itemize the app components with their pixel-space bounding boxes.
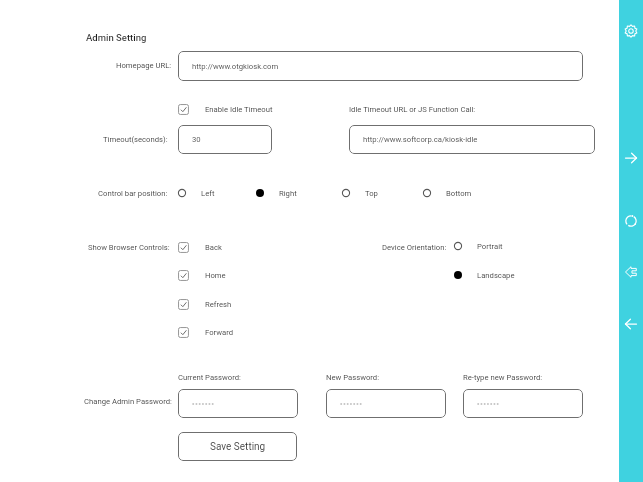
button[interactable]: http://www.softcorp.ca/kiosk-idle (349, 125, 595, 154)
button[interactable]: Portrait (453, 238, 503, 254)
button[interactable] (463, 389, 583, 418)
staticText: Right (279, 189, 297, 198)
staticText: Change Admin Password: (84, 397, 172, 406)
button[interactable]: Back (619, 312, 643, 336)
staticText: Enable Idle Timeout (205, 105, 273, 114)
staticText: Forward (205, 328, 234, 337)
staticText: New Password: (326, 373, 380, 382)
staticText: Control bar position: (98, 189, 168, 198)
staticText: Idle Timeout URL or JS Function Call: (349, 105, 476, 114)
button[interactable]: Refresh (178, 296, 232, 312)
button[interactable]: Top (341, 185, 378, 201)
button[interactable]: Right (255, 185, 297, 201)
button[interactable] (326, 389, 446, 418)
staticText: http://www.otgkiosk.com (192, 62, 279, 71)
staticText: Left (201, 189, 215, 198)
button[interactable]: Forward (619, 146, 643, 170)
button[interactable]: Forward (178, 324, 234, 340)
button[interactable]: Refresh (619, 209, 643, 233)
staticText: Refresh (205, 300, 232, 309)
button[interactable]: Settings (619, 19, 643, 43)
button[interactable]: Back (178, 239, 222, 255)
staticText: Show Browser Controls: (88, 243, 170, 252)
staticText: Home (205, 271, 226, 280)
button[interactable]: Home (178, 267, 226, 283)
button[interactable] (178, 389, 298, 418)
staticText: Re-type new Password: (463, 373, 543, 382)
staticText: 30 (192, 135, 201, 144)
staticText: Homepage URL: (116, 61, 172, 70)
button[interactable]: http://www.otgkiosk.com (178, 51, 583, 81)
button[interactable]: Enable Idle Timeout (178, 101, 273, 117)
button[interactable]: Home (619, 260, 643, 284)
staticText: Portrait (477, 242, 503, 251)
staticText: Timeout(seconds): (103, 135, 168, 144)
staticText: Landscape (477, 271, 515, 280)
button[interactable]: Left (177, 185, 215, 201)
staticText: Device Orientation: (382, 243, 447, 252)
staticText: http://www.softcorp.ca/kiosk-idle (363, 135, 478, 144)
staticText: Top (365, 189, 378, 198)
staticText: Admin Setting (86, 32, 147, 43)
staticText: Current Password: (178, 373, 241, 382)
button[interactable]: Landscape (453, 267, 515, 283)
button[interactable]: 30 (178, 125, 272, 154)
button[interactable]: Bottom (422, 185, 472, 201)
staticText: Back (205, 243, 222, 252)
staticText: Bottom (446, 189, 472, 198)
button[interactable]: Save Setting (178, 432, 297, 461)
staticText: Save Setting (210, 441, 266, 453)
